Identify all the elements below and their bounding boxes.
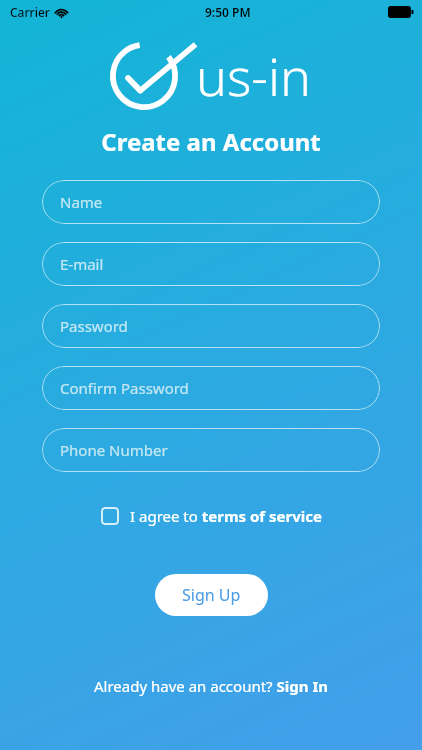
staticText: Already have an account? Sign In <box>94 676 328 696</box>
other: Agree to terms of service <box>101 507 119 525</box>
staticText: E-mail <box>60 254 104 274</box>
button[interactable]: Sign Up <box>155 574 268 616</box>
button[interactable]: Already have an account? Sign In <box>88 672 334 700</box>
button[interactable]: Phone Number <box>42 428 380 472</box>
button[interactable]: Agree to terms of service <box>97 502 326 530</box>
staticText: Confirm Password <box>60 378 189 398</box>
staticText: Phone Number <box>60 440 168 460</box>
staticText: Create an Account <box>0 125 422 158</box>
staticText: 9:50 PM <box>205 4 251 20</box>
staticText: Carrier <box>10 4 50 20</box>
staticText: Sign Up <box>182 584 241 606</box>
staticText: us-in <box>196 40 312 111</box>
button[interactable]: Name <box>42 180 380 224</box>
button[interactable]: E-mail <box>42 242 380 286</box>
button[interactable]: Password <box>42 304 380 348</box>
staticText: Password <box>60 316 128 336</box>
staticText: I agree to terms of service <box>130 506 322 526</box>
button[interactable]: Confirm Password <box>42 366 380 410</box>
staticText: Name <box>60 192 103 212</box>
